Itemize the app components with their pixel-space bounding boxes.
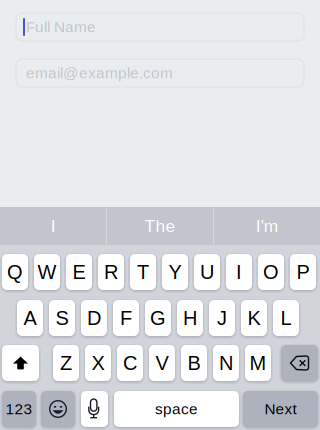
button[interactable]: X xyxy=(85,345,111,381)
button[interactable]: O xyxy=(258,254,284,290)
staticText: email@example.com xyxy=(26,64,173,81)
button[interactable]: N xyxy=(213,345,239,381)
staticText: A xyxy=(23,307,36,329)
button[interactable]: Dictation xyxy=(0,0,320,430)
button[interactable]: Y xyxy=(162,254,188,290)
button[interactable]: space xyxy=(0,0,320,430)
button[interactable]: Delete xyxy=(0,0,320,430)
button[interactable]: I'm xyxy=(213,207,320,245)
button[interactable]: Shift xyxy=(0,0,320,430)
staticText: X xyxy=(91,352,104,374)
button[interactable]: R xyxy=(98,254,124,290)
button[interactable]: L xyxy=(273,300,299,336)
button[interactable]: U xyxy=(194,254,220,290)
staticText: F xyxy=(120,307,132,329)
staticText: Q xyxy=(7,261,23,283)
staticText: G xyxy=(150,307,166,329)
staticText: I xyxy=(51,216,56,236)
staticText: U xyxy=(200,261,214,283)
staticText: E xyxy=(72,261,85,283)
button[interactable]: F xyxy=(113,300,139,336)
button[interactable]: T xyxy=(130,254,156,290)
button[interactable]: I xyxy=(0,207,107,245)
button[interactable]: V xyxy=(149,345,175,381)
button[interactable]: H xyxy=(177,300,203,336)
button[interactable]: B xyxy=(181,345,207,381)
staticText: The xyxy=(144,216,175,236)
staticText: R xyxy=(104,261,118,283)
button[interactable]: C xyxy=(117,345,143,381)
staticText: S xyxy=(55,307,68,329)
button[interactable]: G xyxy=(145,300,171,336)
staticText: W xyxy=(37,261,56,283)
staticText: C xyxy=(123,352,137,374)
staticText: J xyxy=(217,307,227,329)
staticText: Z xyxy=(60,352,72,374)
staticText: Y xyxy=(168,261,181,283)
button[interactable]: Emoji xyxy=(0,0,320,430)
staticText: D xyxy=(87,307,101,329)
staticText: O xyxy=(263,261,279,283)
staticText: Full Name xyxy=(26,18,96,35)
button[interactable]: A xyxy=(17,300,43,336)
button[interactable]: K xyxy=(241,300,267,336)
staticText: I'm xyxy=(256,216,278,236)
staticText: H xyxy=(183,307,197,329)
button[interactable]: P xyxy=(290,254,316,290)
button[interactable]: Next xyxy=(0,0,320,430)
button[interactable]: W xyxy=(34,254,60,290)
button[interactable]: M xyxy=(245,345,271,381)
button[interactable]: 123 xyxy=(0,0,320,430)
staticText: space xyxy=(155,400,198,417)
button[interactable]: D xyxy=(81,300,107,336)
staticText: L xyxy=(280,307,291,329)
button[interactable]: E xyxy=(66,254,92,290)
button[interactable]: The xyxy=(107,207,213,245)
staticText: I xyxy=(236,261,242,283)
staticText: 123 xyxy=(5,400,32,417)
staticText: M xyxy=(249,352,266,374)
staticText: N xyxy=(219,352,233,374)
button[interactable]: Q xyxy=(2,254,28,290)
staticText: P xyxy=(296,261,309,283)
button[interactable]: J xyxy=(209,300,235,336)
staticText: Next xyxy=(264,400,296,417)
staticText: T xyxy=(137,261,149,283)
button[interactable]: S xyxy=(49,300,75,336)
button[interactable]: I xyxy=(226,254,252,290)
staticText: B xyxy=(187,352,200,374)
staticText: K xyxy=(247,307,260,329)
staticText: V xyxy=(155,352,168,374)
button[interactable]: Z xyxy=(53,345,79,381)
